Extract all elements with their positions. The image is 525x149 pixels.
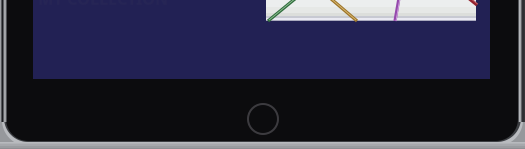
button[interactable]: Home [243,99,283,139]
